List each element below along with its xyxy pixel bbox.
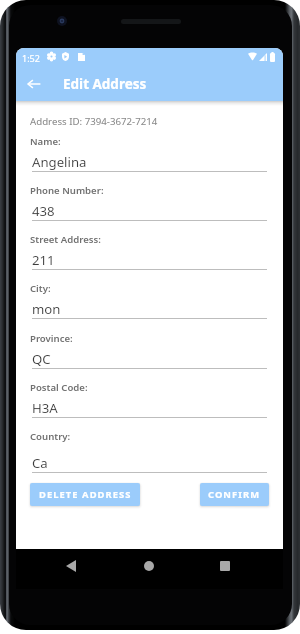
- staticText: Postal Code:: [30, 381, 88, 394]
- staticText: DELETE ADDRESS: [39, 488, 132, 501]
- staticText: Angelina: [32, 153, 87, 171]
- staticText: Ca: [32, 454, 48, 472]
- staticText: CONFIRM: [208, 488, 261, 501]
- staticText: Edit Address: [63, 75, 147, 93]
- staticText: QC: [32, 350, 51, 368]
- staticText: Phone Number:: [30, 184, 104, 197]
- staticText: Street Address:: [30, 233, 101, 246]
- button[interactable]: Home: [128, 549, 170, 583]
- staticText: Province:: [30, 332, 73, 345]
- staticText: mon: [32, 300, 61, 318]
- staticText: 438: [32, 202, 55, 220]
- staticText: Name:: [30, 135, 61, 148]
- button[interactable]: CONFIRM: [200, 483, 269, 506]
- staticText: 1:52: [22, 52, 40, 64]
- button[interactable]: Recent apps: [204, 549, 246, 583]
- staticText: City:: [30, 282, 51, 295]
- staticText: 211: [32, 251, 55, 269]
- button[interactable]: Back: [50, 549, 92, 583]
- button[interactable]: Navigate up: [22, 72, 46, 96]
- button[interactable]: DELETE ADDRESS: [30, 483, 140, 506]
- staticText: H3A: [32, 399, 58, 417]
- staticText: Address ID: 7394-3672-7214: [30, 115, 158, 128]
- staticText: Country:: [30, 430, 71, 443]
